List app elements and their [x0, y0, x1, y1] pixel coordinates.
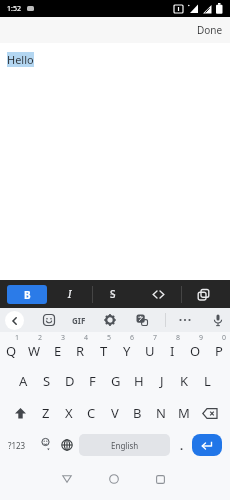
staticText: 1:52 — [7, 4, 21, 14]
button[interactable]: N — [149, 396, 172, 428]
staticText: 1 — [15, 333, 20, 343]
button[interactable]: Done — [197, 17, 223, 43]
button[interactable]: I — [50, 282, 90, 306]
staticText: 5 — [107, 333, 112, 343]
button[interactable] — [138, 282, 178, 306]
button[interactable]: G — [104, 364, 127, 396]
button[interactable]: B — [126, 396, 149, 428]
button[interactable]: B — [7, 285, 47, 304]
button[interactable]: Hello — [7, 52, 34, 67]
button[interactable]: V — [103, 396, 126, 428]
staticText: 0 — [222, 333, 227, 343]
button[interactable]: U — [138, 332, 161, 364]
staticText: ?123 — [8, 440, 26, 451]
staticText: W — [28, 342, 41, 360]
staticText: P — [215, 342, 223, 360]
staticText: G — [111, 372, 121, 390]
button[interactable]: . — [173, 433, 191, 457]
staticText: D — [65, 372, 75, 390]
button[interactable]: D — [58, 364, 81, 396]
staticText: English — [111, 440, 139, 451]
button[interactable]: S — [35, 364, 58, 396]
staticText: J — [160, 372, 164, 390]
staticText: 6 — [130, 333, 135, 343]
staticText: R — [76, 342, 85, 360]
staticText: Y — [123, 342, 131, 360]
button[interactable]: T — [92, 332, 115, 364]
button[interactable]: K — [173, 364, 196, 396]
button[interactable] — [183, 282, 223, 306]
button[interactable]: Z — [35, 396, 57, 428]
button[interactable] — [53, 465, 81, 493]
button[interactable] — [146, 465, 174, 493]
staticText: V — [111, 404, 119, 422]
button[interactable] — [175, 310, 195, 330]
button[interactable] — [195, 396, 230, 428]
button[interactable] — [192, 434, 222, 456]
staticText: K — [180, 372, 189, 390]
button[interactable]: Y — [115, 332, 138, 364]
staticText: I — [170, 342, 175, 360]
button[interactable]: H — [127, 364, 150, 396]
staticText: GIF — [72, 315, 86, 326]
staticText: Done — [197, 23, 223, 37]
staticText: 4 — [84, 333, 89, 343]
button[interactable]: S — [93, 282, 133, 306]
button[interactable]: X — [57, 396, 80, 428]
button[interactable]: GIF — [67, 310, 91, 330]
staticText: F — [89, 372, 96, 390]
staticText: 2 — [38, 333, 43, 343]
staticText: Q — [6, 342, 17, 360]
button[interactable]: English — [79, 434, 170, 456]
staticText: I — [68, 287, 72, 301]
staticText: 3 — [61, 333, 66, 343]
staticText: X — [65, 404, 73, 422]
button[interactable]: F — [81, 364, 104, 396]
button[interactable]: R — [69, 332, 92, 364]
staticText: H — [134, 372, 144, 390]
button[interactable] — [132, 310, 152, 330]
staticText: 7 — [153, 333, 158, 343]
button[interactable] — [100, 310, 120, 330]
staticText: B — [24, 288, 31, 302]
button[interactable]: I — [161, 332, 184, 364]
staticText: N — [156, 404, 166, 422]
button[interactable] — [39, 310, 59, 330]
staticText: C — [87, 404, 96, 422]
staticText: Z — [42, 404, 50, 422]
staticText: O — [190, 342, 201, 360]
button[interactable]: J — [150, 364, 173, 396]
button[interactable]: L — [196, 364, 219, 396]
button[interactable]: O — [184, 332, 207, 364]
button[interactable]: E — [46, 332, 69, 364]
staticText: Hello — [7, 52, 34, 67]
button[interactable]: ?123 — [1, 433, 33, 457]
button[interactable]: Q — [0, 332, 23, 364]
staticText: 8 — [176, 333, 181, 343]
staticText: S — [110, 287, 116, 301]
staticText: U — [145, 342, 155, 360]
staticText: B — [133, 404, 142, 422]
button[interactable]: C — [80, 396, 103, 428]
staticText: L — [204, 372, 211, 390]
staticText: S — [43, 372, 51, 390]
button[interactable] — [208, 310, 228, 330]
button[interactable]: W — [23, 332, 46, 364]
staticText: T — [100, 342, 108, 360]
staticText: 9 — [199, 333, 204, 343]
button[interactable]: M — [172, 396, 195, 428]
staticText: A — [19, 372, 28, 390]
button[interactable] — [0, 396, 35, 428]
button[interactable] — [55, 433, 79, 457]
staticText: E — [54, 342, 62, 360]
staticText: . — [180, 438, 184, 453]
button[interactable]: P — [207, 332, 230, 364]
button[interactable] — [5, 311, 24, 330]
button[interactable] — [33, 433, 57, 457]
button[interactable]: A — [11, 364, 35, 396]
staticText: M — [178, 404, 190, 422]
button[interactable] — [100, 465, 128, 493]
